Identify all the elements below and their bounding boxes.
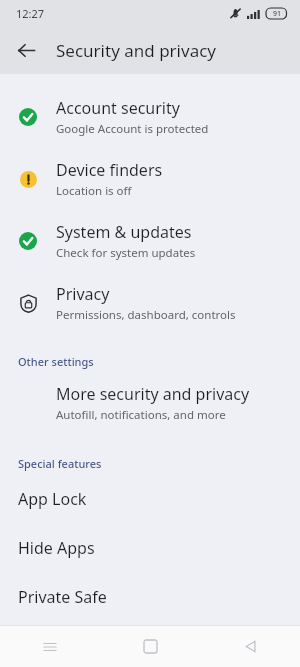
staticText: 12:27 [16,6,45,21]
button[interactable]: Private Safe [0,572,300,621]
button[interactable]: Privacy [0,272,300,334]
button[interactable]: Recent apps [0,626,100,667]
staticText: Google Account is protected [56,121,209,137]
button[interactable]: Back [200,626,300,667]
button[interactable]: Back [8,32,44,68]
staticText: Check for system updates [56,245,196,261]
staticText: App Lock [18,488,87,510]
staticText: Permissions, dashboard, controls [56,307,236,323]
staticText: Device finders [56,159,163,181]
button[interactable]: System & updates [0,210,300,272]
button[interactable]: Hide Apps [0,523,300,572]
staticText: Location is off [56,183,132,199]
button[interactable]: App Lock [0,474,300,523]
staticText: Privacy [56,283,110,305]
staticText: 91 [273,9,282,19]
button[interactable]: Device finders [0,148,300,210]
staticText: System & updates [56,221,192,243]
staticText: Special features [18,456,102,471]
button[interactable]: More security and privacy [0,372,300,434]
staticText: Hide Apps [18,537,95,559]
button[interactable]: Account security [0,86,300,148]
staticText: Security and privacy [56,39,217,62]
staticText: Other settings [18,354,94,369]
staticText: Account security [56,97,180,119]
button[interactable]: Home [100,626,200,667]
staticText: Private Safe [18,586,107,608]
staticText: Autofill, notifications, and more [56,407,226,423]
staticText: More security and privacy [56,383,250,405]
